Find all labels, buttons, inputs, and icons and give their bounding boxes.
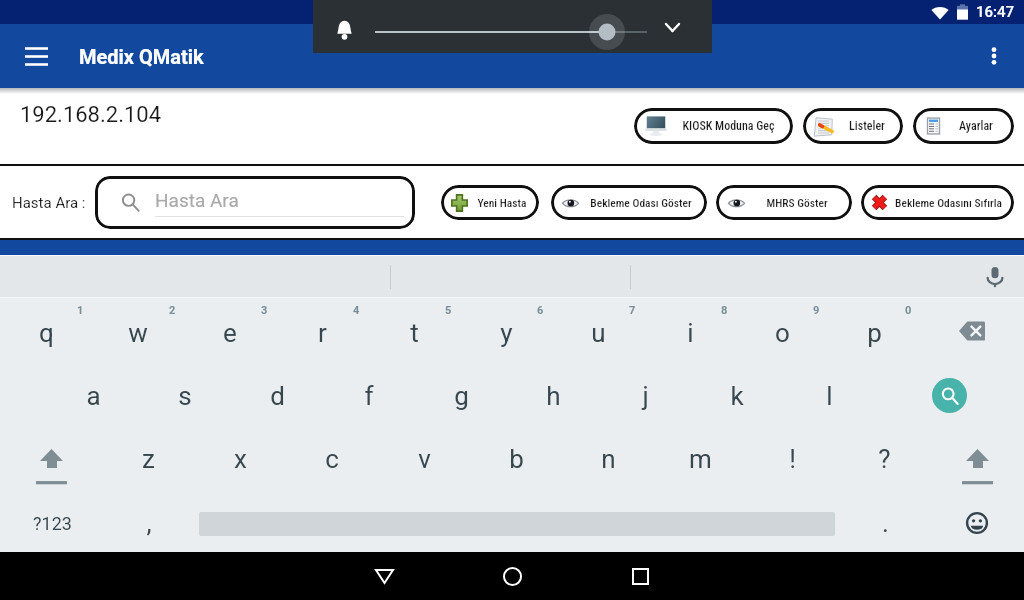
button[interactable]: ? — [838, 424, 930, 488]
button[interactable]: . — [840, 488, 930, 552]
staticText: n — [601, 444, 616, 474]
button[interactable]: y — [460, 298, 552, 361]
button[interactable]: Backspace — [920, 298, 1024, 361]
button[interactable]: r — [276, 298, 368, 361]
staticText: 7 — [629, 304, 636, 317]
button[interactable]: i — [644, 298, 736, 361]
button[interactable]: n — [562, 424, 654, 488]
button[interactable]: Expand — [653, 8, 691, 46]
staticText: 1 — [77, 304, 84, 317]
button[interactable]: b — [470, 424, 562, 488]
other: Emoji — [930, 488, 1024, 552]
button[interactable]: Recents — [608, 552, 672, 600]
button[interactable]: l — [783, 361, 875, 424]
button[interactable]: ! — [746, 424, 838, 488]
button[interactable]: g — [415, 361, 507, 424]
button[interactable]: x — [194, 424, 286, 488]
button[interactable]: t — [368, 298, 460, 361]
staticText: MHRS Göster — [766, 196, 828, 209]
button[interactable]: h — [507, 361, 599, 424]
staticText: c — [325, 444, 339, 474]
button[interactable]: u — [552, 298, 644, 361]
staticText: . — [882, 508, 889, 538]
button[interactable]: d — [231, 361, 323, 424]
button[interactable]: KIOSK Moduna Geç — [634, 108, 793, 144]
button[interactable]: j — [599, 361, 691, 424]
staticText: r — [318, 318, 327, 348]
button[interactable]: f — [323, 361, 415, 424]
staticText: Yeni Hasta — [477, 196, 527, 209]
staticText: 5 — [445, 304, 452, 317]
button[interactable]: Listeler — [803, 108, 903, 144]
staticText: b — [509, 444, 524, 474]
staticText: 16:47 — [976, 3, 1015, 21]
button[interactable]: Home — [480, 552, 544, 600]
staticText: v — [418, 444, 431, 474]
staticText: , — [146, 508, 152, 538]
button[interactable]: MHRS Göster — [716, 185, 852, 220]
staticText: ? — [878, 444, 891, 474]
staticText: g — [454, 381, 469, 411]
button[interactable]: Shift — [0, 424, 102, 488]
staticText: p — [867, 318, 882, 348]
button[interactable]: Emoji — [930, 488, 1024, 552]
staticText: Bekleme Odasını Sıfırla — [895, 196, 1002, 209]
button[interactable]: m — [654, 424, 746, 488]
other: Shift — [0, 424, 102, 488]
staticText: 2 — [169, 304, 176, 317]
staticText: Ayarlar — [959, 119, 993, 133]
button[interactable]: o — [736, 298, 828, 361]
button[interactable]: q — [0, 298, 92, 361]
staticText: d — [270, 381, 285, 411]
other: Search — [875, 361, 1024, 424]
button[interactable]: v — [378, 424, 470, 488]
button[interactable]: a — [47, 361, 139, 424]
button[interactable]: Menu — [13, 33, 59, 79]
button[interactable]: s — [139, 361, 231, 424]
staticText: m — [689, 444, 712, 474]
staticText: l — [826, 381, 833, 411]
staticText: e — [223, 318, 237, 348]
button[interactable]: Hasta Ara — [95, 176, 415, 229]
staticText: w — [128, 318, 148, 348]
staticText: u — [591, 318, 606, 348]
staticText: Hasta Ara : — [12, 194, 86, 212]
staticText: Medix QMatik — [79, 45, 204, 68]
button[interactable]: k — [691, 361, 783, 424]
button[interactable]: Yeni Hasta — [441, 185, 539, 220]
staticText: 0 — [905, 304, 912, 317]
button[interactable]: Back — [352, 552, 416, 600]
button[interactable]: Shift — [930, 424, 1024, 488]
button[interactable]: c — [286, 424, 378, 488]
staticText: x — [234, 444, 247, 474]
button[interactable]: Bekleme Odası Göster — [551, 185, 707, 220]
other: Shift — [930, 424, 1024, 488]
button[interactable]: Space — [194, 488, 840, 552]
button[interactable]: ?123 — [0, 488, 104, 552]
staticText: 8 — [721, 304, 728, 317]
button[interactable]: Search — [875, 361, 1024, 424]
staticText: k — [730, 381, 744, 411]
staticText: y — [500, 318, 513, 348]
staticText: j — [642, 381, 649, 411]
staticText: Hasta Ara — [155, 189, 239, 211]
staticText: KIOSK Moduna Geç — [682, 119, 775, 133]
staticText: Bekleme Odası Göster — [590, 196, 692, 209]
button[interactable]: z — [102, 424, 194, 488]
staticText: 3 — [261, 304, 268, 317]
staticText: 9 — [813, 304, 820, 317]
staticText: 6 — [537, 304, 544, 317]
button[interactable]: w — [92, 298, 184, 361]
staticText: t — [410, 318, 419, 348]
button[interactable]: p — [828, 298, 920, 361]
button[interactable]: , — [104, 488, 194, 552]
staticText: f — [364, 381, 374, 411]
other: Backspace — [920, 298, 1024, 361]
button[interactable]: e — [184, 298, 276, 361]
button[interactable]: Ayarlar — [913, 108, 1014, 144]
staticText: ! — [789, 444, 796, 474]
button[interactable]: Voice input — [976, 258, 1014, 296]
button[interactable]: More options — [968, 30, 1020, 82]
button[interactable]: Bekleme Odasını Sıfırla — [861, 185, 1014, 220]
